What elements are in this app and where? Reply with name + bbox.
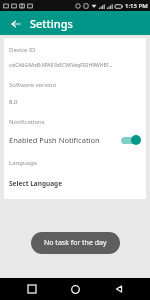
button[interactable]: Select Language [9, 179, 141, 188]
staticText: Enabled Push Notification [9, 135, 119, 145]
staticText: No task for the day [44, 238, 107, 248]
button[interactable]: Back [7, 15, 24, 32]
staticText: 8.0 [9, 98, 18, 106]
button[interactable]: Recents [20, 278, 44, 300]
staticText: Language [9, 159, 38, 167]
staticText: Notifications [9, 118, 45, 126]
button[interactable]: Enabled Push Notification [9, 132, 141, 148]
staticText: Device ID [9, 46, 36, 54]
button[interactable]: No task for the day [31, 232, 120, 254]
button[interactable]: Enabled Push Notification toggle [119, 133, 141, 147]
staticText: Software version [9, 81, 57, 89]
staticText: 1:15 PM [125, 2, 148, 10]
staticText: Select Language [9, 179, 63, 188]
staticText: cviCA6G4AxB:APA91bECVKVeqF02H9WHEF… [9, 62, 113, 69]
button[interactable]: Home [63, 278, 87, 300]
staticText: Settings [30, 16, 73, 31]
button[interactable]: Back [107, 278, 131, 300]
